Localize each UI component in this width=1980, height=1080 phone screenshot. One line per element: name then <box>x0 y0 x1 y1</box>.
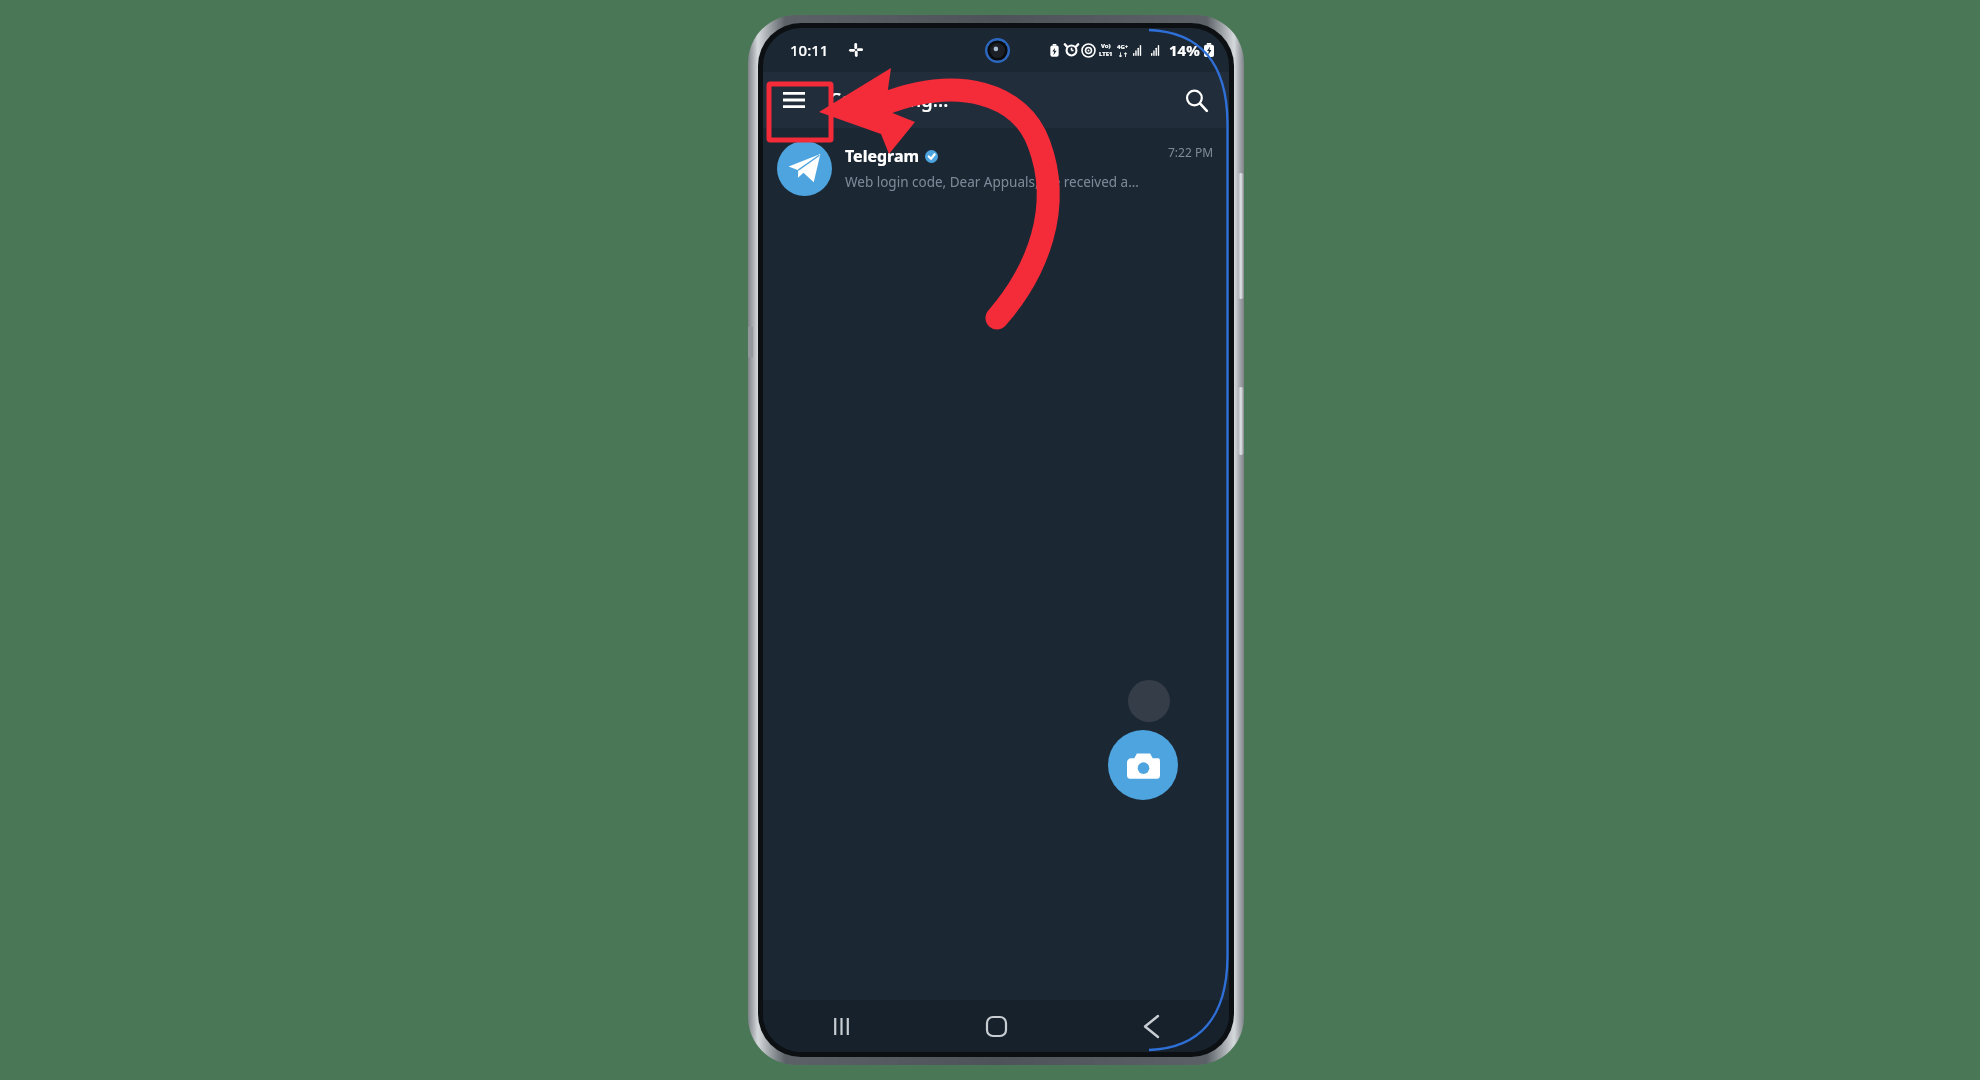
button[interactable]: Home <box>919 1000 1074 1052</box>
staticText: 4G+ <box>1117 43 1129 51</box>
staticText: 7:22 PM <box>1168 144 1214 160</box>
staticText: LTE1 <box>1099 50 1113 58</box>
staticText: Vo) <box>1101 42 1111 50</box>
staticText: Web login code, Dear Appuals, we receive… <box>845 173 1139 191</box>
button[interactable]: Telegram <box>763 128 1229 208</box>
button[interactable]: Search <box>1172 76 1220 124</box>
button[interactable]: Recent apps <box>763 1000 919 1052</box>
button[interactable]: Back <box>1074 1000 1229 1052</box>
button[interactable]: Scroll to bottom <box>1128 680 1170 722</box>
button[interactable]: Open navigation menu <box>770 76 818 124</box>
button[interactable]: New message <box>1108 730 1178 800</box>
staticText: 10:11 <box>790 40 829 60</box>
staticText: Connecting... <box>829 87 949 113</box>
staticText: Telegram <box>845 145 920 167</box>
staticText: 14% <box>1169 40 1200 60</box>
staticText: ↓↑ <box>1118 51 1129 58</box>
